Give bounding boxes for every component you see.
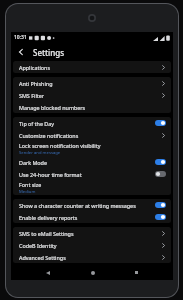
staticText: CodeB Identity [19, 242, 57, 249]
button[interactable]: SMS Filter [13, 89, 171, 101]
staticText: Settings [33, 47, 65, 58]
button[interactable]: Anti Phishing [13, 77, 171, 89]
button[interactable]: Customize notifications [13, 129, 171, 141]
staticText: Sender and message [19, 150, 61, 156]
staticText: Dark Mode [19, 159, 152, 166]
button[interactable]: Enable delivery reports [13, 211, 171, 223]
staticText: Show a character counter at writing mess… [19, 202, 152, 209]
staticText: Use 24-hour time format [19, 171, 152, 178]
staticText: Applications [19, 64, 50, 71]
staticText: Advanced Settings [19, 254, 66, 261]
button[interactable]: Applications [13, 61, 171, 73]
button[interactable]: Recent apps [129, 265, 144, 280]
button[interactable]: Back [40, 265, 55, 280]
staticText: Anti Phishing [19, 80, 53, 87]
staticText: Customize notifications [19, 132, 79, 139]
button[interactable]: SMS to eMail Settings [13, 227, 171, 239]
button[interactable]: CodeB Identity [13, 239, 171, 251]
button[interactable]: Navigate up [14, 45, 28, 59]
staticText: 10:31 [14, 34, 27, 41]
staticText: SMS Filter [19, 92, 45, 99]
button[interactable]: Manage blocked numbers [13, 101, 171, 113]
staticText: Lock screen notification visibility [19, 142, 101, 149]
button[interactable]: Home [85, 265, 100, 280]
button[interactable]: Advanced Settings [13, 251, 171, 263]
staticText: SMS to eMail Settings [19, 230, 74, 237]
button[interactable]: Lock screen notification visibility [13, 141, 171, 156]
staticText: Manage blocked numbers [19, 104, 86, 111]
staticText: Medium [19, 189, 36, 195]
staticText: Font size [19, 181, 42, 188]
button[interactable]: Use 24-hour time format [13, 168, 171, 180]
staticText: Enable delivery reports [19, 214, 152, 221]
button[interactable]: Tip of the Day [13, 117, 171, 129]
button[interactable]: Font size [13, 180, 171, 195]
staticText: Tip of the Day [19, 120, 152, 127]
button[interactable]: Show a character counter at writing mess… [13, 199, 171, 211]
button[interactable]: Dark Mode [13, 156, 171, 168]
